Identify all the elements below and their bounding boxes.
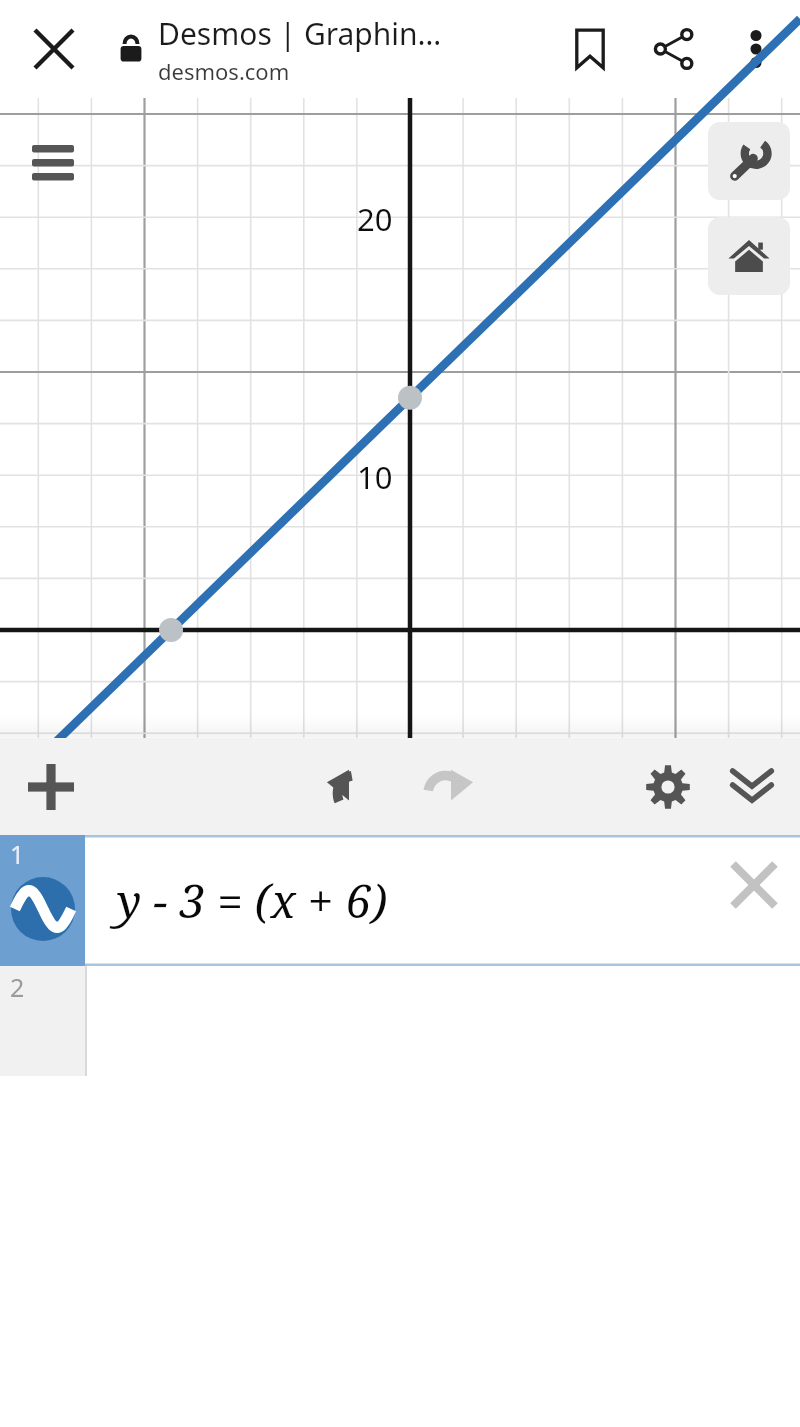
button[interactable]: Menu: [20, 130, 86, 196]
button[interactable]: Bookmark: [548, 7, 632, 91]
staticText: 1: [10, 837, 25, 871]
button[interactable]: More options: [716, 9, 796, 89]
staticText: 20: [357, 198, 393, 240]
staticText: 2: [10, 970, 25, 1004]
button[interactable]: Delete expression: [722, 853, 786, 917]
button[interactable]: Close: [14, 0, 94, 98]
staticText: 10: [652, 732, 688, 774]
staticText: 0: [374, 732, 392, 774]
staticText: -10: [112, 732, 158, 774]
staticText: y − 3 = (x + 6): [117, 869, 388, 932]
button[interactable]: 1: [0, 835, 800, 966]
button[interactable]: Share: [632, 7, 716, 91]
button[interactable]: Collapse panel: [710, 745, 794, 829]
staticText: desmos.com: [158, 56, 290, 86]
staticText: Desmos | Graphin…: [158, 13, 442, 54]
button[interactable]: Home view: [708, 217, 790, 295]
button[interactable]: Add expression: [8, 744, 94, 830]
button[interactable]: 2: [0, 966, 800, 1076]
button[interactable]: Desmos | Graphin…: [118, 0, 498, 98]
button[interactable]: Redo: [407, 743, 495, 831]
staticText: 10: [357, 456, 393, 498]
button[interactable]: Graph settings: [708, 122, 790, 200]
button[interactable]: Undo: [305, 743, 393, 831]
button[interactable]: Settings: [626, 745, 710, 829]
